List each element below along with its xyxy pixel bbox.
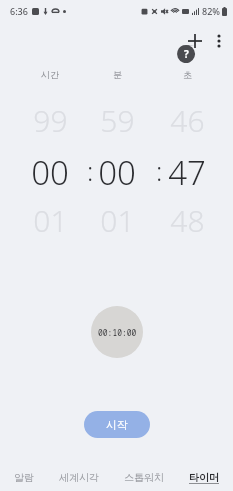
staticText: 초	[183, 69, 192, 80]
button[interactable]: Add timer preset	[183, 29, 207, 53]
staticText: 분	[113, 69, 122, 80]
button[interactable]: 타이머	[189, 463, 219, 491]
staticText: 00	[98, 150, 136, 190]
staticText: :	[87, 153, 94, 188]
staticText: 00	[31, 150, 69, 190]
staticText: 82%	[202, 5, 220, 17]
button[interactable]: 00	[17, 150, 83, 190]
staticText: 01	[100, 200, 135, 238]
button[interactable]: 46	[154, 100, 220, 138]
staticText: 스톱워치	[124, 471, 164, 484]
button[interactable]: Help	[177, 45, 195, 63]
button[interactable]: 알람	[14, 463, 34, 491]
staticText: 시간	[41, 69, 59, 80]
staticText: 세계시각	[59, 471, 99, 484]
staticText: 타이머	[189, 471, 219, 484]
staticText: 48	[170, 200, 205, 238]
button[interactable]: 00:10:00	[91, 306, 143, 358]
staticText: 6:36	[10, 5, 28, 17]
button[interactable]: 스톱워치	[124, 463, 164, 491]
staticText: 알람	[14, 471, 34, 484]
staticText: 00:10:00	[98, 327, 137, 338]
staticText: :	[156, 153, 163, 188]
staticText: 99	[33, 100, 68, 138]
staticText: 59	[100, 100, 135, 138]
button[interactable]: More options	[207, 29, 231, 53]
button[interactable]: 00	[84, 150, 150, 190]
button[interactable]: 47	[154, 150, 220, 190]
button[interactable]: 59	[84, 100, 150, 138]
button[interactable]: 99	[17, 100, 83, 138]
staticText: 46	[170, 100, 205, 138]
staticText: 47	[168, 150, 206, 190]
staticText: 01	[33, 200, 68, 238]
button[interactable]: 세계시각	[59, 463, 99, 491]
button[interactable]: 시작	[84, 411, 150, 438]
staticText: 시작	[106, 418, 128, 432]
button[interactable]: 01	[84, 200, 150, 238]
staticText: ?	[184, 47, 189, 61]
button[interactable]: 48	[154, 200, 220, 238]
button[interactable]: 01	[17, 200, 83, 238]
